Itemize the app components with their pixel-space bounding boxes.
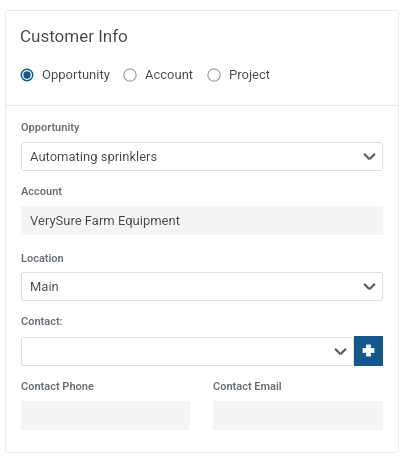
button[interactable]: Automating sprinklers	[21, 142, 383, 171]
button[interactable]: Opportunity	[20, 67, 110, 82]
staticText: Account	[21, 185, 63, 198]
staticText: Opportunity	[21, 121, 80, 134]
staticText: Location	[21, 252, 64, 265]
staticText: Contact Email	[213, 380, 282, 393]
staticText: Account	[145, 67, 194, 82]
staticText: Opportunity	[42, 67, 110, 82]
staticText: Customer Info	[20, 26, 128, 46]
button[interactable]: Account	[123, 67, 194, 82]
staticText: Main	[30, 279, 363, 294]
staticText: Contact Phone	[21, 380, 94, 393]
staticText: Automating sprinklers	[30, 149, 363, 164]
button[interactable]: Project	[207, 67, 270, 82]
staticText: VerySure Farm Equipment	[30, 213, 180, 228]
staticText: Project	[229, 67, 270, 82]
staticText: Contact:	[21, 315, 63, 328]
button[interactable]: Main	[21, 272, 383, 301]
button[interactable]	[21, 337, 354, 366]
button[interactable]: Add contact	[354, 336, 383, 366]
